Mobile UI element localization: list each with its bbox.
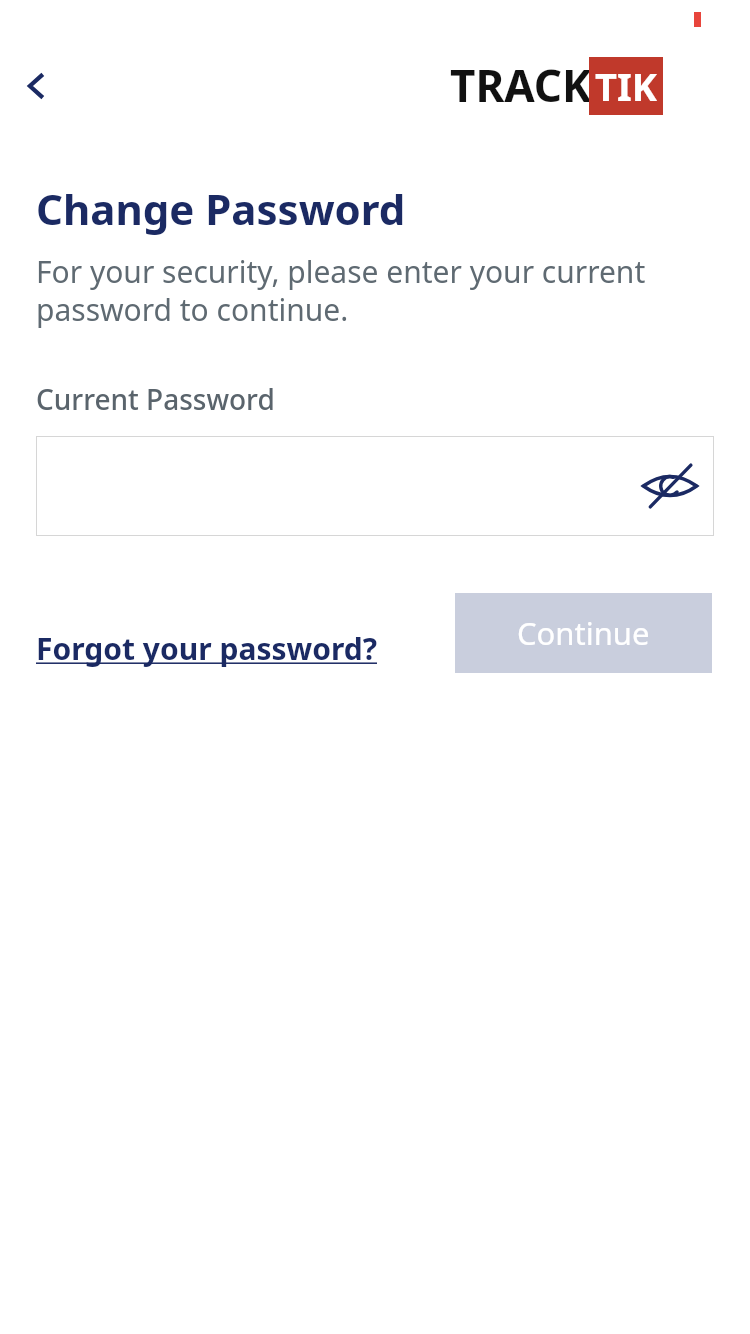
button[interactable]: Continue [455,593,712,673]
button[interactable]: Forgot your password? [36,628,378,669]
staticText: Change Password [36,180,406,237]
button[interactable]: Show password [36,436,714,536]
button[interactable]: Back [6,56,66,116]
staticText: Continue [517,612,650,654]
staticText: For your security, please enter your cur… [36,251,714,330]
staticText: TRACK [450,55,592,115]
staticText: TIK [595,60,657,112]
button[interactable]: Show password [640,456,700,516]
staticText: Forgot your password? [36,628,378,669]
staticText: Current Password [36,380,275,418]
